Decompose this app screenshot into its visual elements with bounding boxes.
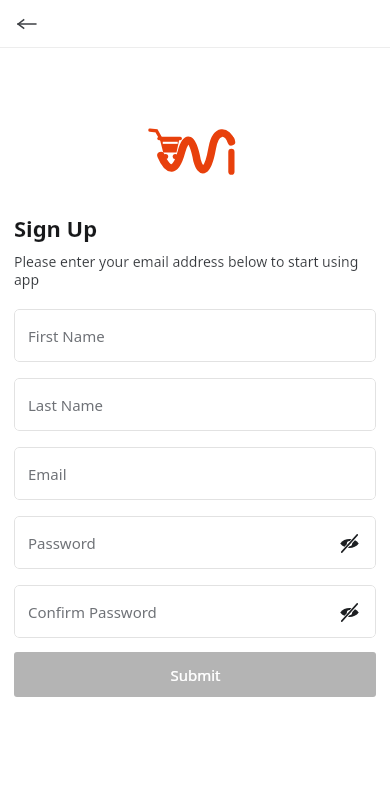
staticText: Email [28,464,364,484]
button[interactable]: Email [14,447,376,500]
button[interactable]: Last Name [14,378,376,431]
button[interactable]: Confirm Password [14,585,376,638]
button[interactable]: Back [10,7,44,41]
button[interactable]: Show password [334,528,364,558]
other: Wi logo [155,128,235,174]
button[interactable]: Show password [334,597,364,627]
staticText: Submit [170,665,221,685]
button[interactable]: Submit [14,652,376,697]
staticText: First Name [28,326,364,346]
staticText: Sign Up [14,213,98,243]
staticText: Password [28,533,334,553]
button[interactable]: Password [14,516,376,569]
staticText: Last Name [28,395,364,415]
button[interactable]: First Name [14,309,376,362]
staticText: Please enter your email address below to… [14,252,376,289]
staticText: Confirm Password [28,602,334,622]
